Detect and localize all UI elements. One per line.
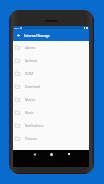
staticText: Download	[25, 85, 40, 89]
staticText: Notifications	[25, 124, 44, 128]
button[interactable]: Download	[13, 80, 89, 93]
button[interactable]: Android	[13, 54, 89, 67]
button[interactable]: Alarms	[13, 41, 89, 54]
staticText: 9:41	[14, 26, 19, 29]
button[interactable]: Pictures	[13, 132, 89, 145]
button[interactable]: Home	[47, 153, 56, 161]
button[interactable]: Music	[13, 106, 89, 119]
button[interactable]: Recent apps	[64, 153, 73, 161]
staticText: Pictures	[25, 137, 37, 141]
staticText: DCIM	[25, 72, 34, 76]
button[interactable]: Back	[30, 153, 39, 161]
staticText: Movies	[25, 98, 36, 102]
button[interactable]: Navigate up	[14, 31, 22, 39]
staticText: Android	[25, 59, 37, 63]
staticText: Alarms	[25, 46, 36, 50]
button[interactable]: Movies	[13, 93, 89, 106]
button[interactable]: Notifications	[13, 119, 89, 132]
staticText: Internal Storage	[24, 33, 50, 37]
staticText: Music	[25, 111, 34, 115]
button[interactable]: DCIM	[13, 67, 89, 80]
